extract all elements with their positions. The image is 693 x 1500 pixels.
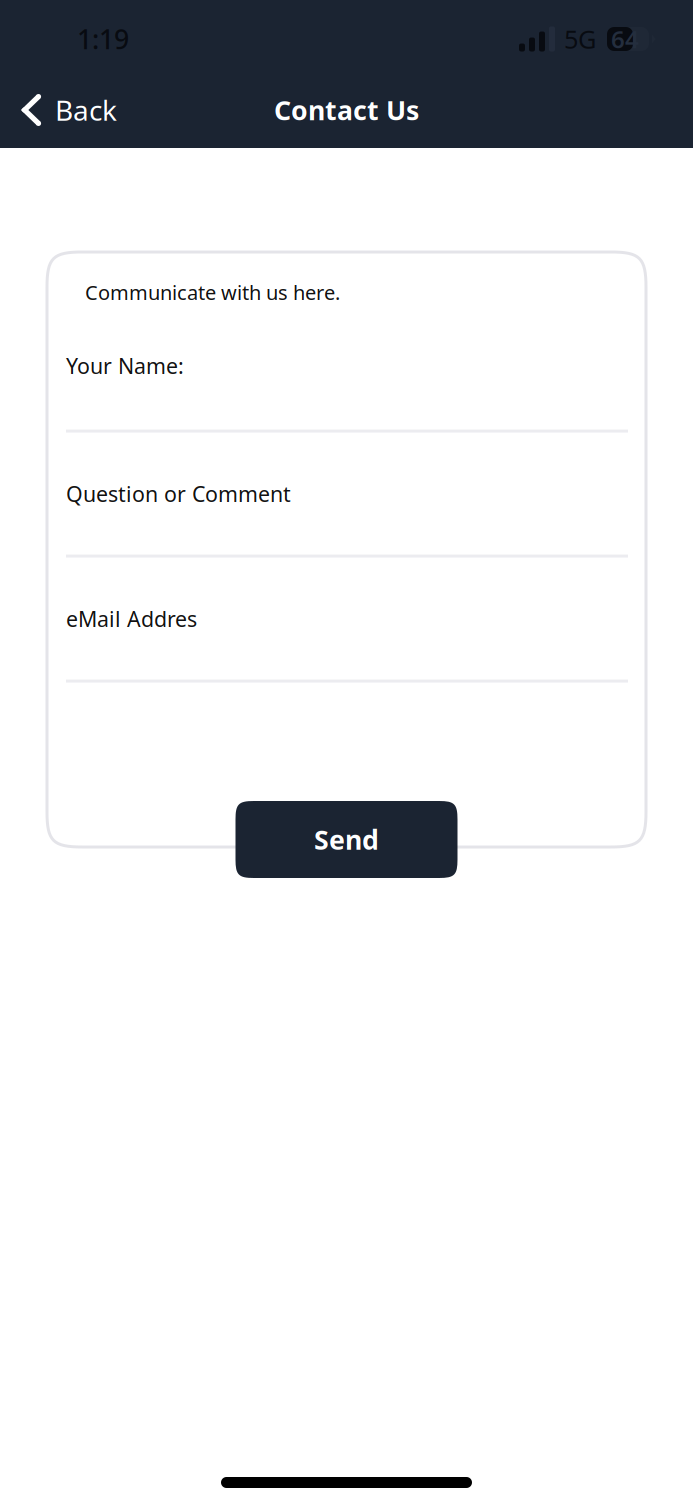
staticText: 5G <box>564 22 596 56</box>
staticText: Your Name: <box>66 352 184 380</box>
staticText: Send <box>314 822 379 857</box>
staticText: Question or Comment <box>66 480 291 508</box>
button[interactable]: Send <box>235 801 457 878</box>
button[interactable]: eMail Addres <box>66 558 628 683</box>
staticText: 1:19 <box>77 21 129 57</box>
button[interactable]: Question or Comment <box>66 433 628 558</box>
button[interactable]: Back <box>0 72 133 148</box>
staticText: Back <box>55 91 117 129</box>
staticText: Contact Us <box>274 92 419 128</box>
staticText: eMail Addres <box>66 605 197 633</box>
staticText: 64 <box>611 23 639 55</box>
button[interactable]: Your Name: <box>66 306 628 433</box>
staticText: Communicate with us here. <box>85 279 340 306</box>
